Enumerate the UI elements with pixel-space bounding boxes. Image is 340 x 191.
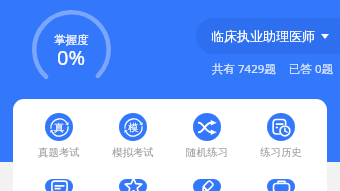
button[interactable]: 我的收藏 <box>22 179 96 191</box>
button[interactable]: 我的笔记 <box>170 179 244 191</box>
staticText: 练习历史 <box>260 146 302 159</box>
staticText: 0% <box>57 44 86 71</box>
staticText: 模拟考试 <box>112 146 154 159</box>
staticText: 真题考试 <box>38 146 80 159</box>
staticText: 已答 0题 <box>289 61 334 77</box>
staticText: 共有 7429题 <box>212 61 276 77</box>
button[interactable]: 练习历史 <box>244 113 318 159</box>
staticText: 临床执业助理医师 <box>211 28 315 44</box>
button[interactable]: 我的错题 <box>96 179 170 191</box>
button[interactable]: 考试大纲 <box>244 179 318 191</box>
button[interactable]: 真题考试 <box>22 113 96 159</box>
button[interactable]: 随机练习 <box>170 113 244 159</box>
staticText: 模 <box>128 121 138 134</box>
staticText: 真 <box>54 121 64 134</box>
staticText: 掌握度 <box>54 33 89 47</box>
staticText: 随机练习 <box>186 146 228 159</box>
button[interactable]: 临床执业助理医师 <box>196 18 340 54</box>
button[interactable]: 模拟考试 <box>96 113 170 159</box>
